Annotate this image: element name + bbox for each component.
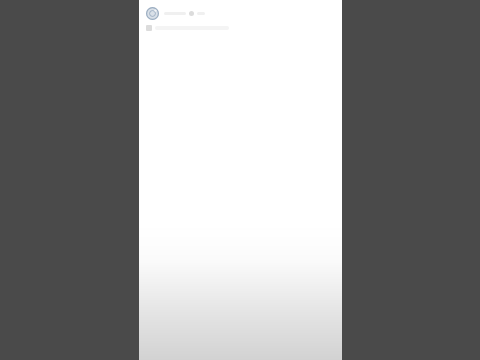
button[interactable]: Profile	[146, 7, 159, 20]
button[interactable]: Profile	[146, 7, 209, 20]
button[interactable]	[146, 25, 229, 31]
